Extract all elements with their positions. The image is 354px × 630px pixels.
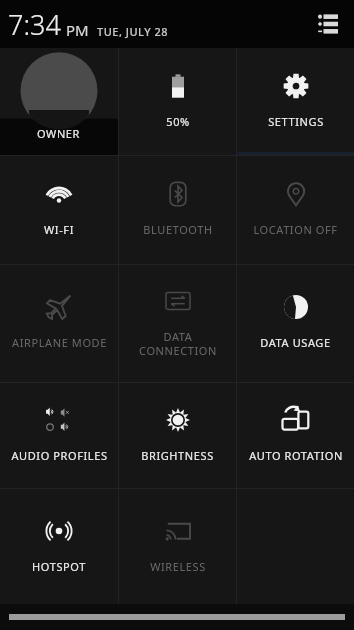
button[interactable]: DATA CONNECTION [119,265,236,382]
staticText: AUDIO PROFILES [11,448,108,463]
staticText: OWNER [37,126,81,141]
staticText: DATA CONNECTION [139,329,217,358]
staticText: DATA USAGE [260,335,331,350]
button[interactable]: Quick settings list [310,7,344,41]
button[interactable]: OWNER [0,48,118,155]
button[interactable]: HOTSPOT [0,489,118,604]
staticText: PM [66,20,89,40]
staticText: 50% [166,114,190,129]
button[interactable]: BRIGHTNESS [119,383,236,488]
button[interactable]: WI-FI [0,156,118,264]
staticText: HOTSPOT [32,559,86,574]
staticText: SETTINGS [268,114,324,129]
button[interactable]: AIRPLANE MODE [0,265,118,382]
staticText: TUE, JULY 28 [97,24,169,39]
button[interactable]: AUDIO PROFILES [0,383,118,488]
staticText: LOCATION OFF [253,222,338,237]
button[interactable]: BLUETOOTH [119,156,236,264]
button[interactable]: SETTINGS [237,48,354,155]
staticText: BRIGHTNESS [141,448,214,463]
staticText: BLUETOOTH [143,222,213,237]
button[interactable]: LOCATION OFF [237,156,354,264]
staticText: AUTO ROTATION [249,448,343,463]
staticText: WI-FI [44,222,74,237]
button[interactable]: WIRELESS [119,489,236,604]
staticText: WIRELESS [150,559,206,574]
staticText: 7:34 [8,6,61,43]
button[interactable]: AUTO ROTATION [237,383,354,488]
button[interactable]: DATA USAGE [237,265,354,382]
button[interactable]: 50% [119,48,236,155]
staticText: AIRPLANE MODE [12,335,107,350]
